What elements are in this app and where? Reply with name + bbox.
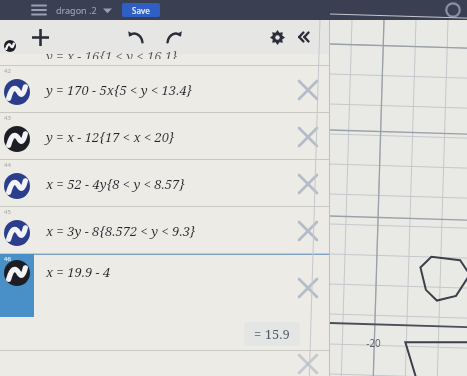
button[interactable]: 42: [0, 66, 330, 113]
button[interactable]: = 15.9: [244, 322, 300, 346]
staticText: 42: [4, 67, 11, 75]
button[interactable]: Delete expression: [0, 351, 330, 376]
staticText: y = 170 − 5x{5 < y < 13.4}: [46, 81, 193, 99]
staticText: y = x − 16{1 < y < 16.1}: [46, 47, 178, 59]
button[interactable]: Redo: [162, 25, 186, 49]
staticText: dragon .2: [56, 4, 97, 16]
button[interactable]: 44: [0, 160, 330, 207]
button[interactable]: Undo: [124, 25, 148, 49]
staticText: 46: [4, 255, 11, 263]
button[interactable]: dragon .2: [56, 4, 112, 16]
button[interactable]: 43: [0, 113, 330, 160]
staticText: x = 3y − 8{8.572 < y < 9.3}: [46, 222, 196, 240]
staticText: y = x − 12{17 < x < 20}: [46, 128, 175, 146]
staticText: 44: [4, 161, 11, 169]
staticText: x = 19.9 − 4: [46, 263, 111, 281]
button[interactable]: 46: [0, 254, 330, 317]
button[interactable]: y = x − 16{1 < y < 16.1}: [0, 54, 330, 66]
button[interactable]: Settings: [266, 26, 288, 48]
staticText: = 15.9: [254, 325, 290, 343]
staticText: 45: [4, 208, 11, 216]
button[interactable]: Add expression: [28, 25, 52, 49]
staticText: x = 52 − 4y{8 < y < 8.57}: [46, 175, 185, 193]
button[interactable]: Collapse panel: [294, 26, 316, 48]
staticText: 43: [4, 114, 11, 122]
button[interactable]: Delete expression: [294, 274, 322, 302]
button[interactable]: Delete expression: [294, 170, 322, 198]
staticText: Save: [132, 5, 150, 16]
button[interactable]: Menu: [30, 1, 48, 19]
button[interactable]: Delete expression: [294, 123, 322, 151]
button[interactable]: Account: [445, 2, 461, 18]
button[interactable]: 45: [0, 207, 330, 254]
staticText: -20: [366, 336, 381, 350]
button[interactable]: Delete expression: [294, 76, 322, 104]
button[interactable]: Delete expression: [294, 351, 322, 376]
button[interactable]: Delete expression: [294, 217, 322, 245]
button[interactable]: Save: [122, 3, 160, 17]
